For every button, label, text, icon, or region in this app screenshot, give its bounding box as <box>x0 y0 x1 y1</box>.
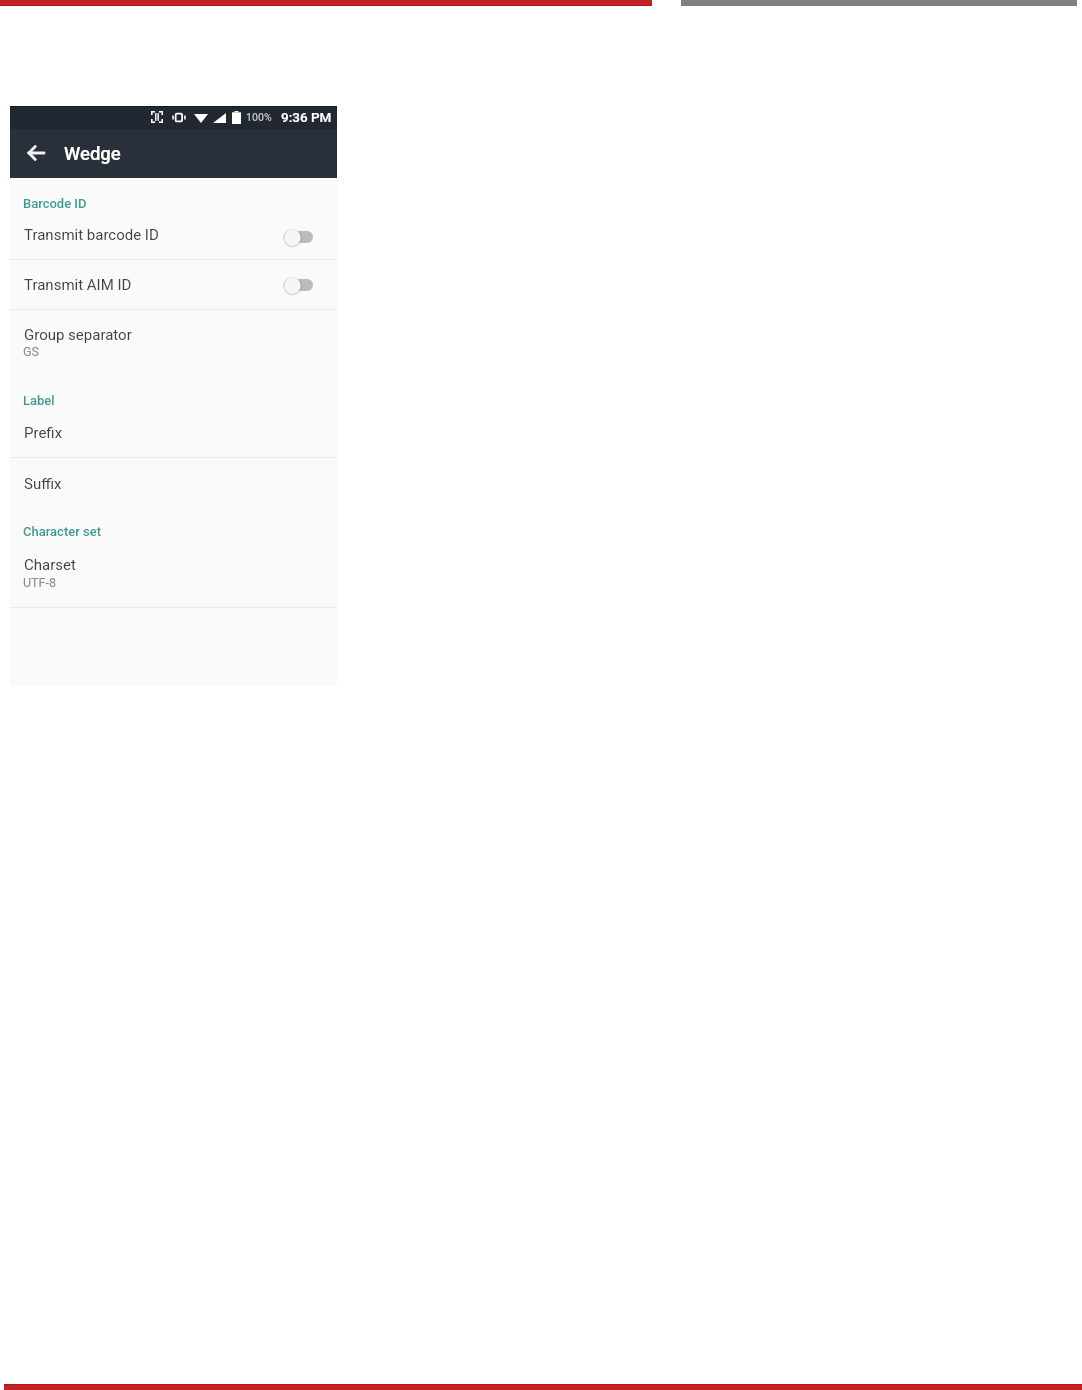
staticText: Transmit AIM ID <box>24 276 132 294</box>
button[interactable]: Suffix <box>10 458 337 507</box>
button[interactable]: Prefix <box>10 412 337 457</box>
staticText: Wedge <box>64 143 121 165</box>
staticText: UTF-8 <box>23 575 56 590</box>
staticText: Barcode ID <box>23 196 87 211</box>
staticText: Character set <box>23 524 101 539</box>
button[interactable]: Transmit barcode ID <box>10 214 337 259</box>
staticText: Transmit barcode ID <box>24 226 159 244</box>
staticText: 9:36 PM <box>281 109 332 125</box>
staticText: 100% <box>246 111 272 123</box>
staticText: GS <box>23 344 39 359</box>
staticText: Prefix <box>24 424 63 442</box>
staticText: Charset <box>24 556 76 574</box>
button[interactable]: Toggle setting <box>283 226 313 248</box>
button[interactable]: Group separator <box>10 310 337 374</box>
staticText: Group separator <box>24 326 132 344</box>
staticText: Label <box>23 393 55 408</box>
button[interactable]: Navigate up <box>23 140 49 166</box>
button[interactable]: Transmit AIM ID <box>10 260 337 309</box>
staticText: Suffix <box>24 475 62 493</box>
button[interactable]: Charset <box>10 544 337 607</box>
button[interactable]: Toggle setting <box>283 274 313 296</box>
